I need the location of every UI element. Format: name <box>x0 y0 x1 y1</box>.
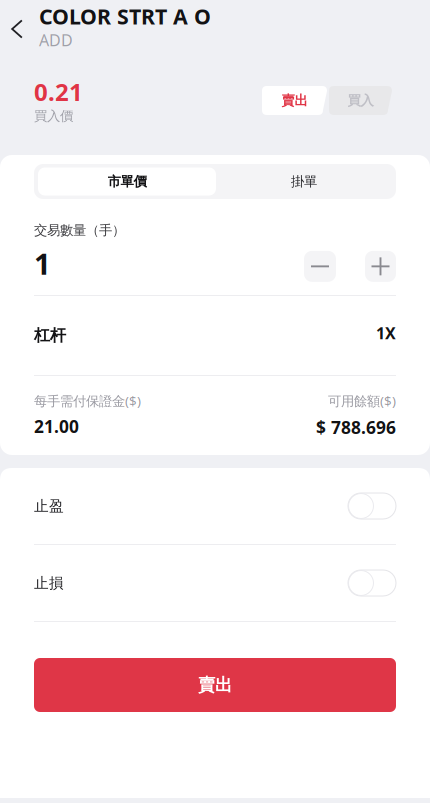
staticText: 21.00 <box>34 415 79 438</box>
staticText: 杠杆 <box>34 326 66 345</box>
staticText: 止盈 <box>34 497 64 515</box>
button[interactable]: 賣出 <box>34 658 396 712</box>
staticText: 買入價 <box>34 108 73 124</box>
staticText: 交易數量（手） <box>34 222 125 238</box>
staticText: 1 <box>34 244 51 283</box>
button[interactable]: 市單價 <box>38 167 216 195</box>
staticText: 每手需付保證金($) <box>34 392 141 410</box>
staticText: 1X <box>376 322 396 344</box>
staticText: 可用餘額($) <box>328 392 396 410</box>
button[interactable]: 止損 <box>348 570 396 596</box>
staticText: ADD <box>39 29 73 50</box>
button[interactable]: 買入 <box>329 86 392 115</box>
button[interactable]: 賣出 <box>262 86 327 115</box>
staticText: 賣出 <box>198 674 232 696</box>
staticText: COLOR STRT A O <box>39 2 211 30</box>
staticText: 0.21 <box>34 76 83 108</box>
staticText: 止損 <box>34 574 64 592</box>
button[interactable]: Decrease quantity <box>304 251 336 282</box>
button[interactable]: 止盈 <box>348 493 396 519</box>
staticText: 市單價 <box>107 173 146 190</box>
staticText: $ 788.696 <box>316 416 396 439</box>
staticText: 掛單 <box>291 173 317 190</box>
button[interactable]: Increase quantity <box>365 251 396 282</box>
staticText: 賣出 <box>281 92 307 109</box>
button[interactable]: Back <box>3 0 31 48</box>
button[interactable]: 掛單 <box>216 167 392 195</box>
staticText: 買入 <box>347 92 373 109</box>
